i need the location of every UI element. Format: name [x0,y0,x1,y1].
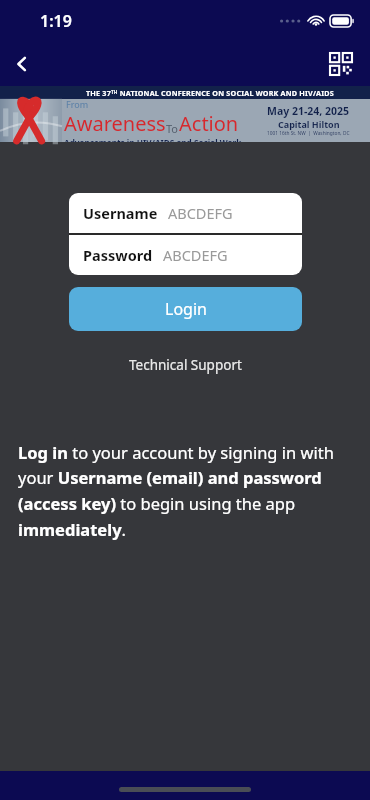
button[interactable]: Username [69,193,302,233]
staticText: Password [83,245,153,265]
button[interactable]: Password [69,235,302,275]
staticText: Advancements in HIV/AIDS and Social Work [64,137,242,142]
staticText: 1:19 [40,10,72,32]
staticText: Awareness [64,110,166,137]
button[interactable]: Technical Support [119,353,252,377]
staticText: ABCDEFG [163,245,228,265]
staticText: May 21-24, 2025 [267,104,350,118]
staticText: THE 37ᵀᴴ NATIONAL CONFERENCE ON SOCIAL W… [86,88,334,98]
staticText: Capital Hilton [278,118,340,130]
staticText: Username [83,203,158,223]
button[interactable]: Login [69,287,302,331]
staticText: Action [179,110,239,137]
staticText: To [166,121,179,136]
staticText: Log in to your account by signing in wit… [18,441,352,541]
staticText: 1001 16th St. NW | Washington, DC [267,130,350,137]
staticText: From [66,98,89,110]
staticText: Technical Support [129,356,242,374]
button[interactable]: Back [0,42,44,86]
button[interactable]: Scan QR code [324,47,358,81]
staticText: ABCDEFG [168,203,233,223]
staticText: Login [165,298,207,320]
